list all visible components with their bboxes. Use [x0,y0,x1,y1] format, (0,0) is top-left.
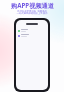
staticText: 一站式购物体验轻松上手操作 [16,12,48,15]
staticText: 购APP视频通道 [11,1,54,9]
button[interactable] [18,29,46,33]
button[interactable] [18,34,46,38]
staticText: 支持安卓苹果设备 海量商品 [17,9,47,12]
